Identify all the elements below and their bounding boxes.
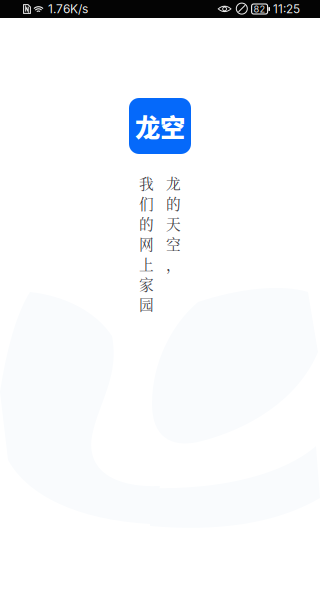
staticText: 们 bbox=[139, 193, 154, 214]
staticText: 1.76K/s bbox=[48, 2, 88, 16]
staticText: 82 bbox=[254, 3, 266, 15]
staticText: 我 bbox=[139, 172, 154, 194]
staticText: ， bbox=[166, 253, 181, 274]
staticText: 空 bbox=[166, 233, 181, 254]
staticText: 天 bbox=[166, 213, 181, 234]
staticText: 龙空 bbox=[135, 108, 185, 144]
staticText: 龙 bbox=[166, 172, 181, 194]
staticText: 园 bbox=[139, 294, 154, 315]
staticText: 的 bbox=[166, 193, 181, 214]
staticText: 11:25 bbox=[273, 2, 300, 16]
staticText: 家 bbox=[139, 273, 154, 295]
staticText: 网 bbox=[139, 233, 154, 254]
staticText: 上 bbox=[139, 253, 154, 274]
staticText: 的 bbox=[139, 213, 154, 234]
